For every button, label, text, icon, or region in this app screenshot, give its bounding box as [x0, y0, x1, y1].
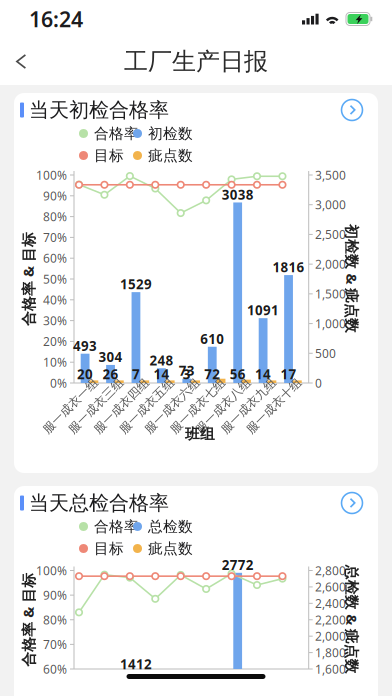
- staticText: 2,200: [315, 612, 346, 628]
- staticText: 合格率 & 目标: [0, 610, 75, 629]
- staticText: 当天初检合格率: [29, 98, 169, 122]
- staticText: 当天总检合格率: [29, 491, 169, 515]
- staticText: 疵点数: [148, 539, 193, 557]
- staticText: 500: [315, 345, 336, 361]
- staticText: 72: [204, 365, 220, 383]
- staticText: 服一成衣一组: [34, 399, 106, 413]
- staticText: 初检数 & 疵点数: [297, 269, 392, 289]
- staticText: 14: [255, 365, 271, 383]
- staticText: 目标: [94, 539, 124, 557]
- staticText: 服一成衣六组: [136, 399, 208, 413]
- staticText: 80%: [43, 612, 67, 628]
- staticText: 70%: [43, 229, 67, 245]
- staticText: 3,000: [315, 197, 346, 213]
- staticText: 2,800: [315, 562, 346, 578]
- staticText: 2,500: [315, 226, 346, 242]
- staticText: 70%: [43, 636, 67, 652]
- staticText: 总检数 & 疵点数: [297, 610, 392, 629]
- staticText: 服一成衣四组: [85, 399, 157, 413]
- staticText: 2772: [222, 556, 254, 574]
- staticText: 3038: [222, 186, 254, 203]
- staticText: 班组: [185, 425, 215, 443]
- staticText: 1091: [247, 301, 279, 319]
- staticText: 80%: [43, 209, 67, 224]
- staticText: 7: [132, 365, 140, 383]
- staticText: 服一成衣七组: [162, 399, 234, 413]
- staticText: 1,000: [315, 316, 346, 331]
- staticText: 2,000: [315, 628, 346, 644]
- staticText: 目标: [94, 146, 124, 164]
- staticText: 20: [77, 365, 93, 383]
- staticText: 2,600: [315, 579, 346, 595]
- staticText: 工厂生产日报: [124, 47, 268, 76]
- staticText: 总检数: [148, 517, 193, 535]
- staticText: 493: [73, 337, 97, 354]
- staticText: 60%: [43, 250, 67, 266]
- staticText: 1,500: [315, 286, 346, 302]
- staticText: 50%: [43, 271, 67, 287]
- staticText: 合格率: [94, 124, 139, 142]
- staticText: 服一成衣十组: [238, 399, 310, 413]
- button[interactable]: 返回: [0, 39, 42, 84]
- staticText: 初检数: [148, 124, 193, 142]
- staticText: 2,400: [315, 595, 346, 611]
- staticText: 20%: [43, 333, 67, 349]
- staticText: 1816: [272, 258, 304, 276]
- staticText: 合格率 & 目标: [0, 269, 75, 289]
- staticText: 73: [179, 362, 195, 379]
- staticText: 3: [183, 365, 191, 383]
- staticText: 248: [149, 351, 173, 369]
- button[interactable]: 查看详情: [334, 93, 370, 127]
- staticText: 100%: [36, 562, 67, 578]
- staticText: 100%: [36, 167, 67, 183]
- staticText: 610: [200, 330, 224, 348]
- staticText: 26: [102, 365, 118, 383]
- staticText: 服一成衣九组: [212, 399, 284, 413]
- staticText: 1529: [120, 275, 152, 293]
- staticText: 2,000: [315, 256, 346, 272]
- staticText: 疵点数: [148, 146, 193, 164]
- staticText: 1412: [120, 655, 152, 673]
- staticText: 90%: [43, 188, 67, 204]
- staticText: 304: [98, 348, 122, 366]
- staticText: 40%: [43, 292, 67, 308]
- staticText: 服一成衣八组: [187, 399, 259, 413]
- staticText: 90%: [43, 587, 67, 603]
- staticText: 服一成衣三组: [60, 399, 132, 413]
- staticText: 10%: [43, 354, 67, 370]
- staticText: 14: [153, 365, 169, 383]
- staticText: 0%: [50, 375, 67, 391]
- button[interactable]: 查看详情: [334, 486, 370, 520]
- staticText: 30%: [43, 313, 67, 328]
- staticText: 0: [315, 375, 322, 391]
- staticText: 16:24: [29, 5, 83, 33]
- staticText: 服一成衣五组: [111, 399, 183, 413]
- staticText: 合格率: [94, 517, 139, 535]
- staticText: 60%: [43, 661, 67, 677]
- staticText: 3,500: [315, 167, 346, 183]
- staticText: 17: [280, 365, 296, 383]
- staticText: 1,800: [315, 645, 346, 660]
- staticText: 56: [230, 365, 246, 383]
- staticText: 1,600: [315, 661, 346, 677]
